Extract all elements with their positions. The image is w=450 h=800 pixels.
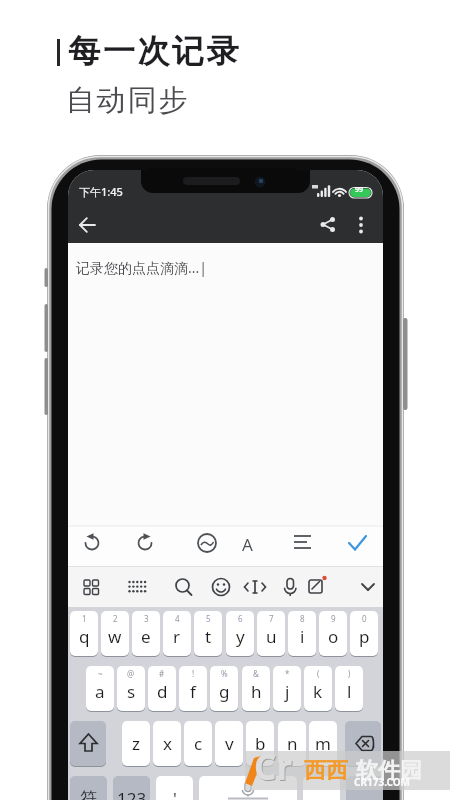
button[interactable]: s xyxy=(117,666,145,711)
staticText: a xyxy=(95,680,105,703)
button[interactable] xyxy=(76,527,108,565)
staticText: t xyxy=(205,625,212,648)
button[interactable] xyxy=(206,568,236,606)
button[interactable] xyxy=(169,568,199,606)
staticText: ' xyxy=(173,787,177,800)
button[interactable]: i xyxy=(288,611,316,656)
button[interactable]: 。 xyxy=(303,776,340,800)
staticText: A xyxy=(242,533,253,556)
button[interactable]: k xyxy=(304,666,332,711)
button[interactable]: b xyxy=(246,721,274,766)
staticText: u xyxy=(266,625,277,648)
button[interactable]: ' xyxy=(156,776,193,800)
staticText: 123 xyxy=(117,787,147,800)
button[interactable]: f xyxy=(179,666,207,711)
button[interactable]: h xyxy=(242,666,270,711)
button[interactable]: z xyxy=(122,721,150,766)
staticText: g xyxy=(219,680,230,703)
button[interactable]: 123 xyxy=(113,776,150,800)
staticText: r xyxy=(173,625,181,648)
staticText: 5 xyxy=(206,613,211,624)
staticText: * xyxy=(285,668,290,679)
staticText: Cr xyxy=(254,743,293,791)
staticText: 每一次记录 xyxy=(67,31,240,71)
staticText: h xyxy=(251,680,262,703)
staticText: s xyxy=(127,680,136,703)
staticText: ! xyxy=(192,668,195,679)
button[interactable] xyxy=(349,212,373,238)
staticText: Cr xyxy=(255,744,294,792)
staticText: ~ xyxy=(98,668,103,679)
staticText: f xyxy=(190,680,196,703)
button[interactable]: n xyxy=(278,721,306,766)
button[interactable] xyxy=(70,721,106,766)
staticText: y xyxy=(236,625,245,648)
staticText: d xyxy=(157,680,168,703)
staticText: 西西 xyxy=(304,757,348,785)
staticText: c xyxy=(194,732,203,755)
button[interactable]: a xyxy=(86,666,114,711)
staticText: 符 xyxy=(80,788,97,800)
button[interactable]: x xyxy=(153,721,181,766)
staticText: j xyxy=(285,680,290,703)
button[interactable] xyxy=(129,527,161,565)
button[interactable] xyxy=(346,776,383,800)
staticText: 7 xyxy=(269,613,274,624)
button[interactable] xyxy=(345,721,381,766)
button[interactable] xyxy=(191,527,223,565)
button[interactable]: l xyxy=(335,666,363,711)
button[interactable] xyxy=(353,568,383,606)
staticText: 2 xyxy=(113,613,118,624)
staticText: o xyxy=(328,625,339,648)
button[interactable] xyxy=(286,527,318,565)
button[interactable]: j xyxy=(273,666,301,711)
staticText: p xyxy=(359,625,370,648)
button[interactable]: g xyxy=(210,666,238,711)
staticText: @ xyxy=(127,668,135,679)
staticText: 8 xyxy=(300,613,305,624)
staticText: & xyxy=(253,668,259,679)
button[interactable]: o xyxy=(319,611,347,656)
button[interactable]: r xyxy=(163,611,191,656)
staticText: ( xyxy=(317,668,320,679)
button[interactable]: q xyxy=(70,611,98,656)
button[interactable]: v xyxy=(215,721,243,766)
button[interactable]: w xyxy=(101,611,129,656)
button[interactable] xyxy=(341,527,373,565)
staticText: 软件园 xyxy=(356,757,422,785)
button[interactable] xyxy=(76,568,106,606)
button[interactable] xyxy=(75,212,101,238)
staticText: 99 xyxy=(355,185,364,195)
button[interactable] xyxy=(318,212,344,238)
button[interactable]: u xyxy=(257,611,285,656)
button[interactable]: d xyxy=(148,666,176,711)
button[interactable] xyxy=(199,776,297,800)
button[interactable] xyxy=(302,568,332,606)
button[interactable]: 符 xyxy=(70,776,107,800)
staticText: x xyxy=(163,732,172,755)
staticText: 4 xyxy=(175,613,180,624)
button[interactable]: e xyxy=(132,611,160,656)
staticText: 1 xyxy=(82,613,87,624)
staticText: ) xyxy=(348,668,351,679)
button[interactable] xyxy=(233,527,265,565)
staticText: 3 xyxy=(144,613,149,624)
button[interactable]: t xyxy=(194,611,222,656)
button[interactable] xyxy=(122,568,152,606)
staticText: m xyxy=(315,732,331,755)
staticText: CR173.COM xyxy=(354,775,411,789)
staticText: q xyxy=(79,625,90,648)
staticText: 记录您的点点滴滴...| xyxy=(76,258,207,277)
button[interactable] xyxy=(240,568,270,606)
staticText: e xyxy=(141,625,151,648)
staticText: 6 xyxy=(238,613,243,624)
staticText: % xyxy=(221,668,228,679)
button[interactable]: m xyxy=(309,721,337,766)
button[interactable]: c xyxy=(184,721,212,766)
staticText: 。 xyxy=(313,788,330,800)
staticText: n xyxy=(287,732,298,755)
button[interactable]: p xyxy=(350,611,378,656)
button[interactable] xyxy=(275,568,305,606)
staticText: 9 xyxy=(331,613,336,624)
button[interactable]: y xyxy=(226,611,254,656)
